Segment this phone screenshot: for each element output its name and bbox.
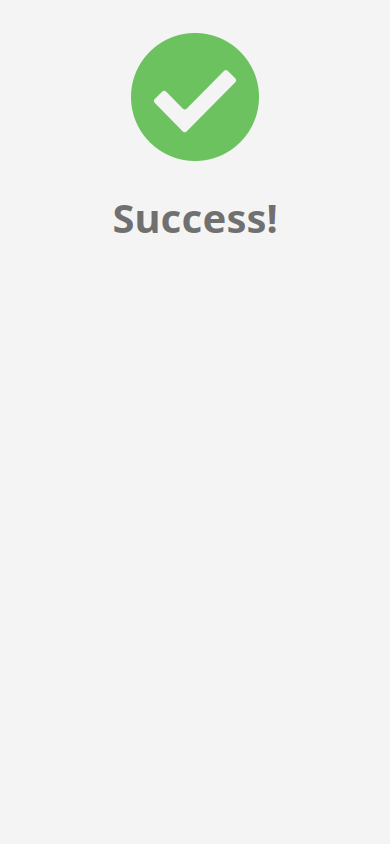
staticText: Success! xyxy=(112,191,277,244)
